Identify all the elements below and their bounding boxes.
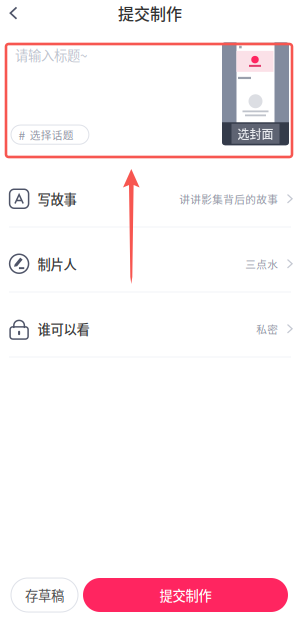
staticText: # (18, 126, 25, 143)
button[interactable]: 提交制作 (83, 578, 288, 612)
staticText: 制片人 (37, 254, 76, 273)
staticText: 讲讲影集背后的故事 (179, 191, 278, 206)
button[interactable]: 写故事 (0, 162, 300, 227)
staticText: 提交制作 (118, 2, 182, 24)
button[interactable]: 制片人 (0, 227, 300, 292)
button[interactable]: 选封面 (222, 42, 289, 145)
staticText: 谁可以看 (37, 319, 89, 338)
staticText: 三点水 (245, 256, 278, 271)
staticText: 选封面 (237, 125, 273, 142)
button[interactable]: 存草稿 (11, 578, 78, 612)
staticText: 存草稿 (25, 586, 64, 604)
button[interactable]: # (11, 125, 89, 144)
button[interactable]: 返回 (0, 0, 27, 26)
button[interactable]: 谁可以看 (0, 292, 300, 357)
staticText: 请输入标题~ (15, 45, 87, 64)
staticText: 写故事 (37, 189, 76, 208)
staticText: 私密 (256, 321, 278, 336)
staticText: 提交制作 (159, 586, 211, 604)
staticText: 选择话题 (30, 127, 74, 142)
